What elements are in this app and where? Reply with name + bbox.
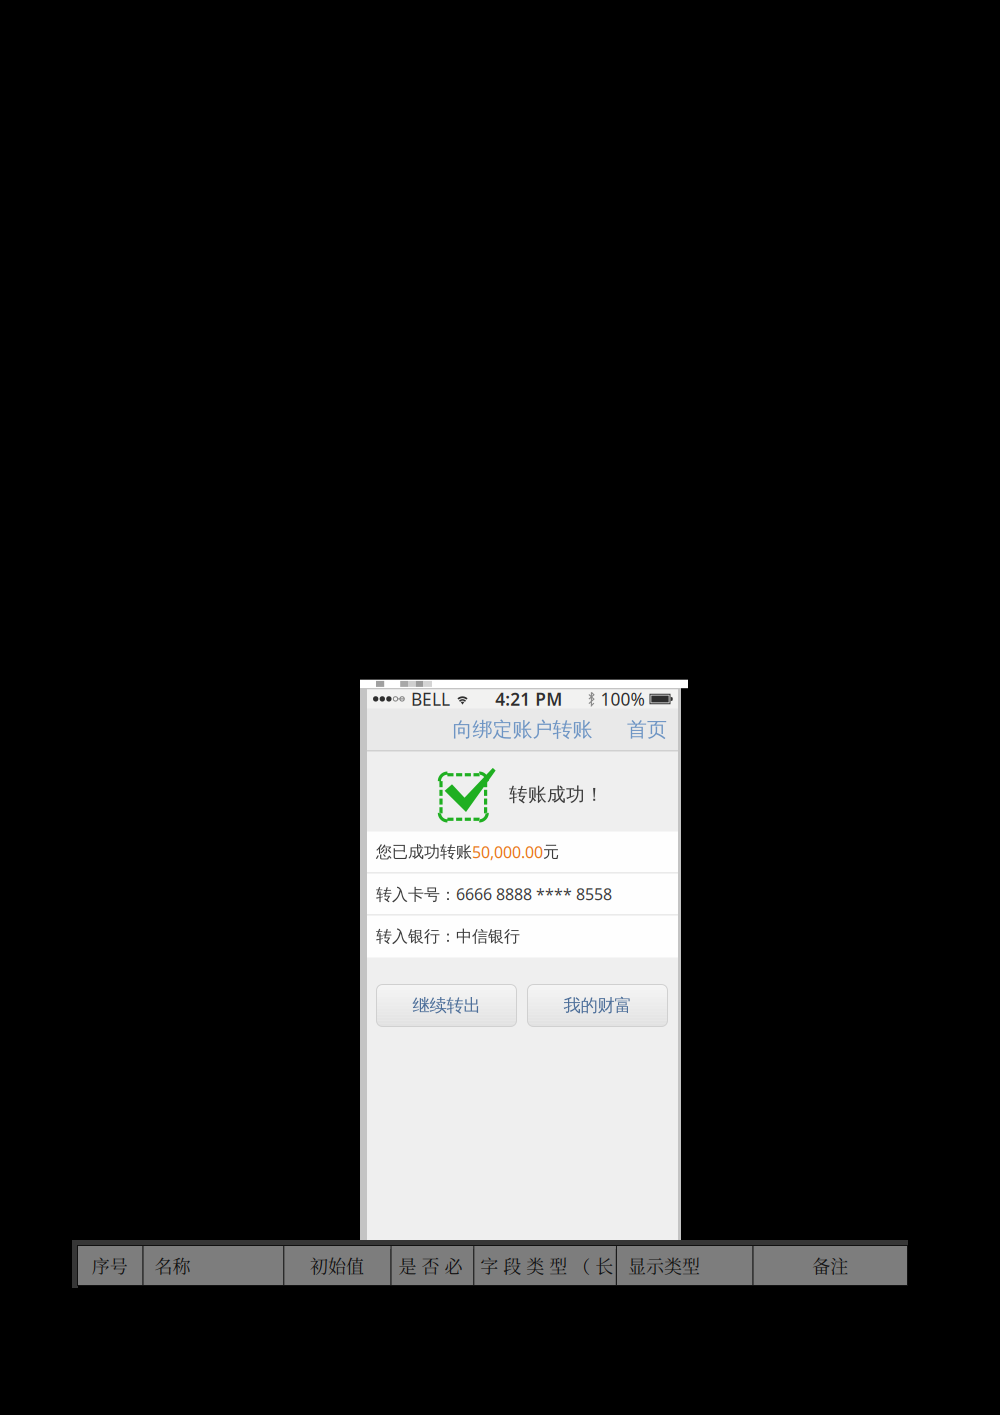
staticText: 初始值	[310, 1253, 364, 1278]
staticText: 50,000.00	[472, 841, 543, 863]
staticText: 您已成功转账	[376, 842, 472, 862]
staticText: 首页	[627, 717, 667, 742]
staticText: 向绑定账户转账	[452, 717, 592, 742]
staticText: 继续转出	[412, 995, 480, 1016]
button[interactable]: 首页	[616, 708, 678, 750]
staticText: 我的财富	[563, 995, 631, 1016]
staticText: 4:21 PM	[495, 687, 562, 710]
staticText: 名称	[154, 1253, 190, 1278]
button[interactable]: 我的财富	[527, 984, 667, 1026]
staticText: 是 否 必	[398, 1253, 462, 1278]
staticText: 字 段 类 型 （ 长	[480, 1253, 613, 1278]
staticText: 显示类型	[628, 1253, 700, 1278]
button[interactable]: 继续转出	[376, 984, 516, 1026]
staticText: 序号	[92, 1253, 128, 1278]
staticText: 转入卡号：6666 8888 **** 8558	[376, 883, 612, 905]
staticText: 备注	[812, 1253, 848, 1278]
staticText: BELL	[411, 687, 450, 710]
staticText: 转入银行：中信银行	[376, 927, 520, 946]
staticText: 100%	[600, 687, 644, 710]
staticText: 转账成功！	[509, 783, 604, 806]
staticText: 元	[543, 842, 559, 862]
